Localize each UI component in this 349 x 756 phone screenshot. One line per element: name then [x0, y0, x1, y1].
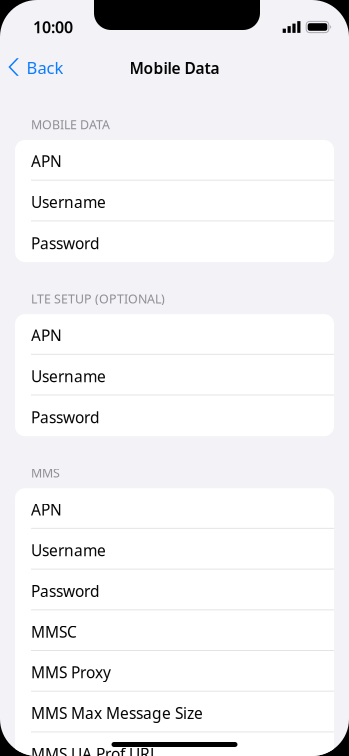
staticText: Username — [31, 366, 106, 387]
button[interactable]: APN — [15, 140, 334, 181]
button[interactable]: APN — [15, 314, 334, 355]
staticText: MOBILE DATA — [31, 116, 110, 133]
staticText: APN — [31, 151, 62, 172]
staticText: Password — [31, 407, 100, 428]
button[interactable]: Password — [15, 570, 334, 610]
staticText: Password — [31, 580, 100, 601]
button[interactable]: Username — [15, 181, 334, 221]
staticText: 10:00 — [33, 16, 73, 38]
staticText: MMS Max Message Size — [31, 702, 203, 724]
button[interactable]: Username — [15, 355, 334, 395]
staticText: MMSC — [31, 621, 77, 642]
staticText: MMS UA Prof URL — [31, 743, 158, 756]
staticText: LTE SETUP (OPTIONAL) — [31, 290, 165, 307]
staticText: MMS Proxy — [31, 662, 111, 683]
button[interactable]: MMS Max Message Size — [15, 692, 334, 732]
button[interactable]: MMS UA Prof URL — [15, 732, 334, 756]
staticText: Mobile Data — [129, 57, 219, 79]
button[interactable]: Back — [0, 44, 73, 88]
staticText: Username — [31, 191, 106, 213]
staticText: Username — [31, 540, 106, 561]
button[interactable]: APN — [15, 488, 334, 529]
button[interactable]: MMSC — [15, 610, 334, 651]
button[interactable]: Username — [15, 529, 334, 570]
staticText: MMS — [31, 464, 60, 481]
staticText: APN — [31, 499, 62, 520]
staticText: APN — [31, 325, 62, 346]
button[interactable]: Password — [15, 395, 334, 436]
button[interactable]: Password — [15, 221, 334, 262]
staticText: Back — [26, 56, 63, 79]
button[interactable]: MMS Proxy — [15, 651, 334, 692]
staticText: Password — [31, 233, 100, 254]
